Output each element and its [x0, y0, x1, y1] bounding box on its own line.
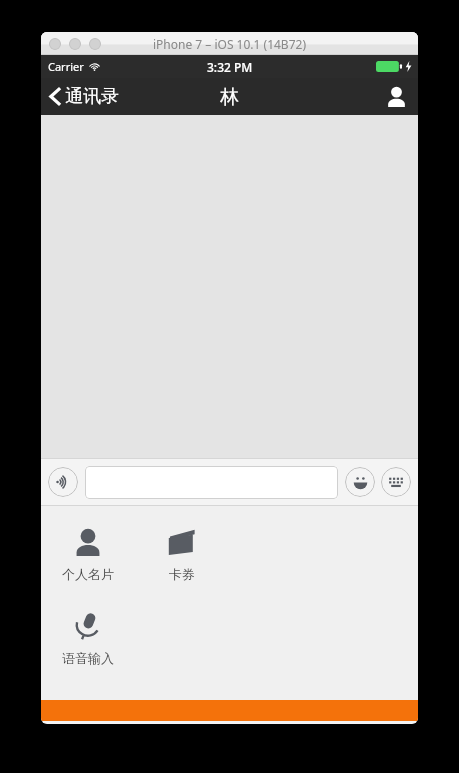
- button[interactable]: Emoji: [345, 467, 375, 497]
- button[interactable]: Contact profile: [375, 80, 418, 113]
- staticText: 通讯录: [65, 85, 119, 108]
- staticText: 个人名片: [62, 566, 114, 582]
- button[interactable]: 卡券: [135, 524, 229, 584]
- button[interactable]: Message input: [85, 466, 338, 499]
- button[interactable]: Keyboard: [381, 467, 411, 497]
- staticText: 卡券: [169, 566, 195, 582]
- button[interactable]: Close: [49, 38, 61, 50]
- button[interactable]: 通讯录: [41, 81, 129, 112]
- button[interactable]: Minimize: [69, 38, 81, 50]
- staticText: 林: [220, 85, 239, 109]
- button[interactable]: Zoom: [89, 38, 101, 50]
- staticText: iPhone 7 – iOS 10.1 (14B72): [153, 36, 307, 52]
- button[interactable]: Voice message: [48, 467, 78, 497]
- staticText: 3:32 PM: [207, 59, 253, 75]
- staticText: Carrier: [48, 59, 84, 74]
- button[interactable]: 个人名片: [41, 524, 135, 584]
- staticText: 语音输入: [62, 650, 114, 666]
- button[interactable]: 语音输入: [41, 608, 135, 668]
